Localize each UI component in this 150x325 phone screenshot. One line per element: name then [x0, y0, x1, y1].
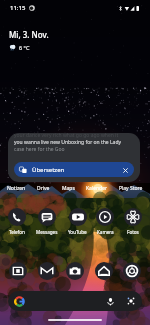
- button[interactable]: YouTube: [68, 208, 87, 235]
- staticText: Kalender: [86, 185, 108, 192]
- staticText: Telefon: [9, 229, 25, 235]
- button[interactable]: Maps: [62, 185, 75, 192]
- button[interactable]: Google Home: [95, 262, 113, 280]
- button[interactable]: Schließen: [121, 166, 129, 174]
- staticText: Übersetzen: [32, 166, 65, 174]
- staticText: Maps: [62, 185, 75, 192]
- button[interactable]: Dateien: [9, 262, 27, 280]
- button[interactable]: your dance very rich what go go ago when…: [8, 133, 140, 182]
- button[interactable]: Notizen: [7, 185, 26, 192]
- button[interactable]: Übersetzen: [14, 162, 134, 177]
- staticText: Mi, 3. Nov.: [9, 29, 49, 40]
- button[interactable]: Drive: [37, 185, 50, 192]
- button[interactable]: Kamera: [96, 208, 114, 235]
- other: Google: [14, 296, 25, 307]
- staticText: YouTube: [68, 229, 87, 235]
- button[interactable]: Gmail: [38, 262, 56, 280]
- staticText: you wanna live new Unboxing for on the L…: [14, 139, 122, 146]
- staticText: 6 °C: [19, 44, 30, 51]
- staticText: 11:15: [10, 4, 26, 12]
- button[interactable]: Messages: [36, 208, 58, 235]
- button[interactable]: Telefon: [8, 208, 26, 235]
- button[interactable]: Sprachsuche: [106, 297, 115, 306]
- button[interactable]: Chrome: [123, 262, 141, 280]
- staticText: Notizen: [7, 185, 26, 192]
- staticText: case here for the Goo: [14, 146, 65, 153]
- button[interactable]: Google Lens: [126, 296, 136, 306]
- button[interactable]: Google: [8, 291, 142, 311]
- button[interactable]: Fotos: [124, 208, 142, 235]
- staticText: Play Store: [119, 185, 143, 192]
- staticText: Kamera: [97, 229, 114, 235]
- button[interactable]: Kalender: [86, 185, 108, 192]
- staticText: Fotos: [127, 229, 139, 235]
- staticText: Drive: [37, 185, 50, 192]
- staticText: your dance very rich what go go ago when…: [14, 133, 119, 139]
- button[interactable]: Kamera: [66, 262, 84, 280]
- button[interactable]: Play Store: [119, 185, 143, 192]
- staticText: Messages: [36, 229, 58, 235]
